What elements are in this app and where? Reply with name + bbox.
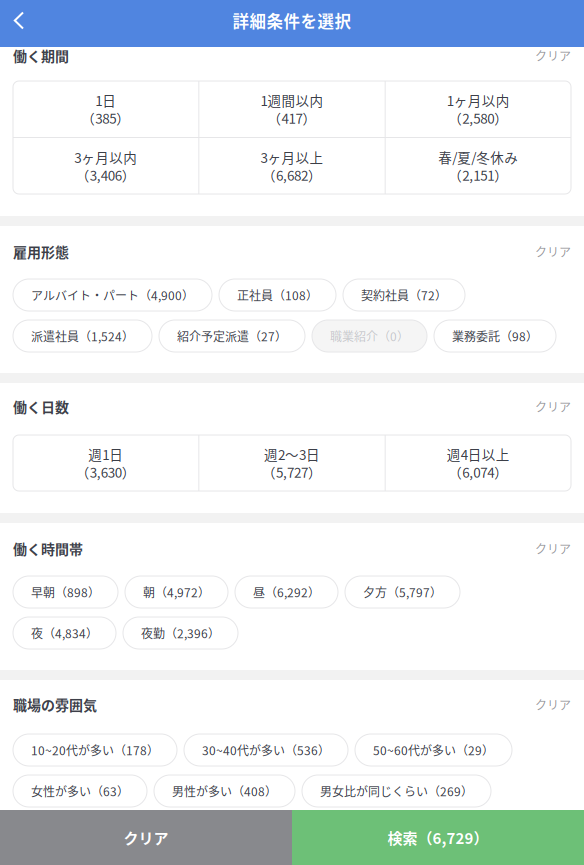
button[interactable]: 昼（6,292）: [235, 576, 338, 608]
staticText: 働く期間: [13, 45, 69, 66]
staticText: 職場の雰囲気: [13, 694, 97, 715]
staticText: クリア: [535, 398, 571, 415]
staticText: 3ヶ月以上: [260, 147, 323, 167]
staticText: 業務委託（98）: [452, 327, 538, 345]
staticText: 検索（6,729）: [387, 827, 488, 848]
staticText: 30~40代が多い（536）: [202, 741, 330, 759]
staticText: （5,727）: [262, 462, 322, 481]
staticText: 週2〜3日: [264, 444, 320, 464]
button[interactable]: 夕方（5,797）: [345, 576, 460, 608]
staticText: 正社員（108）: [237, 286, 318, 304]
button[interactable]: 春/夏/冬休み: [386, 138, 571, 194]
staticText: 昼（6,292）: [253, 583, 320, 601]
button[interactable]: 週2〜3日: [199, 435, 385, 491]
staticText: 契約社員（72）: [361, 286, 447, 304]
staticText: 週1日: [88, 444, 123, 464]
staticText: 早朝（898）: [31, 583, 100, 601]
staticText: クリア: [535, 243, 571, 260]
button[interactable]: クリア: [535, 540, 571, 557]
button[interactable]: 検索（6,729）: [292, 810, 584, 865]
button[interactable]: 1ヶ月以内: [386, 81, 571, 137]
staticText: 夜勤（2,396）: [141, 624, 220, 642]
button[interactable]: 紹介予定派遣（27）: [159, 320, 305, 352]
staticText: （417）: [267, 108, 316, 127]
staticText: クリア: [535, 540, 571, 557]
staticText: 女性が多い（63）: [31, 782, 129, 800]
button[interactable]: 夜（4,834）: [13, 617, 116, 649]
button[interactable]: 男女比が同じくらい（269）: [302, 775, 491, 807]
staticText: 1ヶ月以内: [447, 90, 510, 110]
button[interactable]: 30~40代が多い（536）: [184, 734, 348, 766]
button[interactable]: クリア: [535, 398, 571, 415]
staticText: 職業紹介（0）: [330, 327, 409, 345]
staticText: 1日: [95, 90, 116, 110]
button[interactable]: 男性が多い（408）: [154, 775, 295, 807]
staticText: 紹介予定派遣（27）: [177, 327, 287, 345]
button[interactable]: 派遣社員（1,524）: [13, 320, 152, 352]
staticText: 10~20代が多い（178）: [31, 741, 159, 759]
staticText: 1週間以内: [260, 90, 323, 110]
button[interactable]: 1日: [13, 81, 198, 137]
staticText: 詳細条件を選択: [232, 9, 351, 32]
button[interactable]: 1週間以内: [199, 81, 385, 137]
staticText: （2,580）: [448, 108, 508, 127]
button[interactable]: クリア: [535, 47, 571, 64]
button[interactable]: 正社員（108）: [219, 279, 336, 311]
button[interactable]: 契約社員（72）: [343, 279, 465, 311]
staticText: （3,406）: [76, 165, 136, 184]
staticText: （385）: [81, 108, 130, 127]
staticText: クリア: [535, 696, 571, 713]
button[interactable]: 朝（4,972）: [125, 576, 228, 608]
staticText: 朝（4,972）: [143, 583, 210, 601]
button[interactable]: クリア: [0, 810, 292, 865]
staticText: アルバイト・パート（4,900）: [31, 286, 194, 304]
button[interactable]: 50~60代が多い（29）: [355, 734, 512, 766]
staticText: 雇用形態: [13, 241, 69, 262]
button[interactable]: 女性が多い（63）: [13, 775, 147, 807]
button[interactable]: 職業紹介（0）: [312, 320, 427, 352]
button[interactable]: 3ヶ月以上: [199, 138, 385, 194]
button[interactable]: クリア: [535, 243, 571, 260]
button[interactable]: 夜勤（2,396）: [123, 617, 238, 649]
staticText: クリア: [123, 827, 168, 848]
staticText: （3,630）: [76, 462, 136, 481]
button[interactable]: 戻る: [0, 0, 38, 41]
button[interactable]: アルバイト・パート（4,900）: [13, 279, 212, 311]
staticText: 夜（4,834）: [31, 624, 98, 642]
staticText: 男女比が同じくらい（269）: [320, 782, 473, 800]
staticText: クリア: [535, 47, 571, 64]
button[interactable]: 3ヶ月以内: [13, 138, 198, 194]
staticText: 派遣社員（1,524）: [31, 327, 134, 345]
staticText: 週4日以上: [447, 444, 510, 464]
staticText: 春/夏/冬休み: [438, 147, 518, 167]
staticText: （2,151）: [448, 165, 508, 184]
button[interactable]: 業務委託（98）: [434, 320, 556, 352]
staticText: 男性が多い（408）: [172, 782, 277, 800]
button[interactable]: 週1日: [13, 435, 198, 491]
staticText: 働く時間帯: [13, 538, 83, 559]
staticText: 働く日数: [13, 396, 69, 417]
button[interactable]: 週4日以上: [386, 435, 571, 491]
staticText: （6,682）: [262, 165, 322, 184]
staticText: （6,074）: [448, 462, 508, 481]
button[interactable]: 早朝（898）: [13, 576, 118, 608]
button[interactable]: 10~20代が多い（178）: [13, 734, 177, 766]
staticText: 夕方（5,797）: [363, 583, 442, 601]
button[interactable]: クリア: [535, 696, 571, 713]
staticText: 50~60代が多い（29）: [373, 741, 494, 759]
staticText: 3ヶ月以内: [74, 147, 137, 167]
